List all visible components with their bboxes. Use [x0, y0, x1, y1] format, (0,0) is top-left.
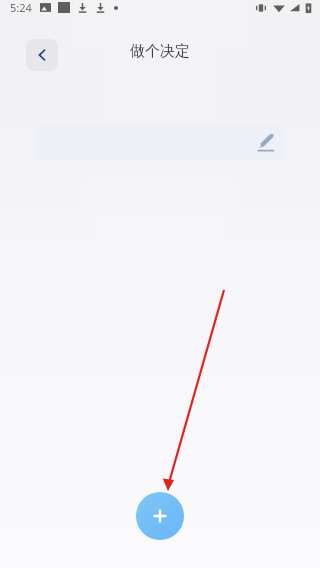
button[interactable]: Add	[136, 492, 184, 540]
staticText: 做个决定	[0, 42, 320, 61]
staticText: 5:24	[10, 0, 32, 15]
button[interactable]: Edit	[36, 124, 285, 160]
button[interactable]: Back	[26, 39, 58, 71]
button[interactable]: Edit	[254, 131, 276, 153]
